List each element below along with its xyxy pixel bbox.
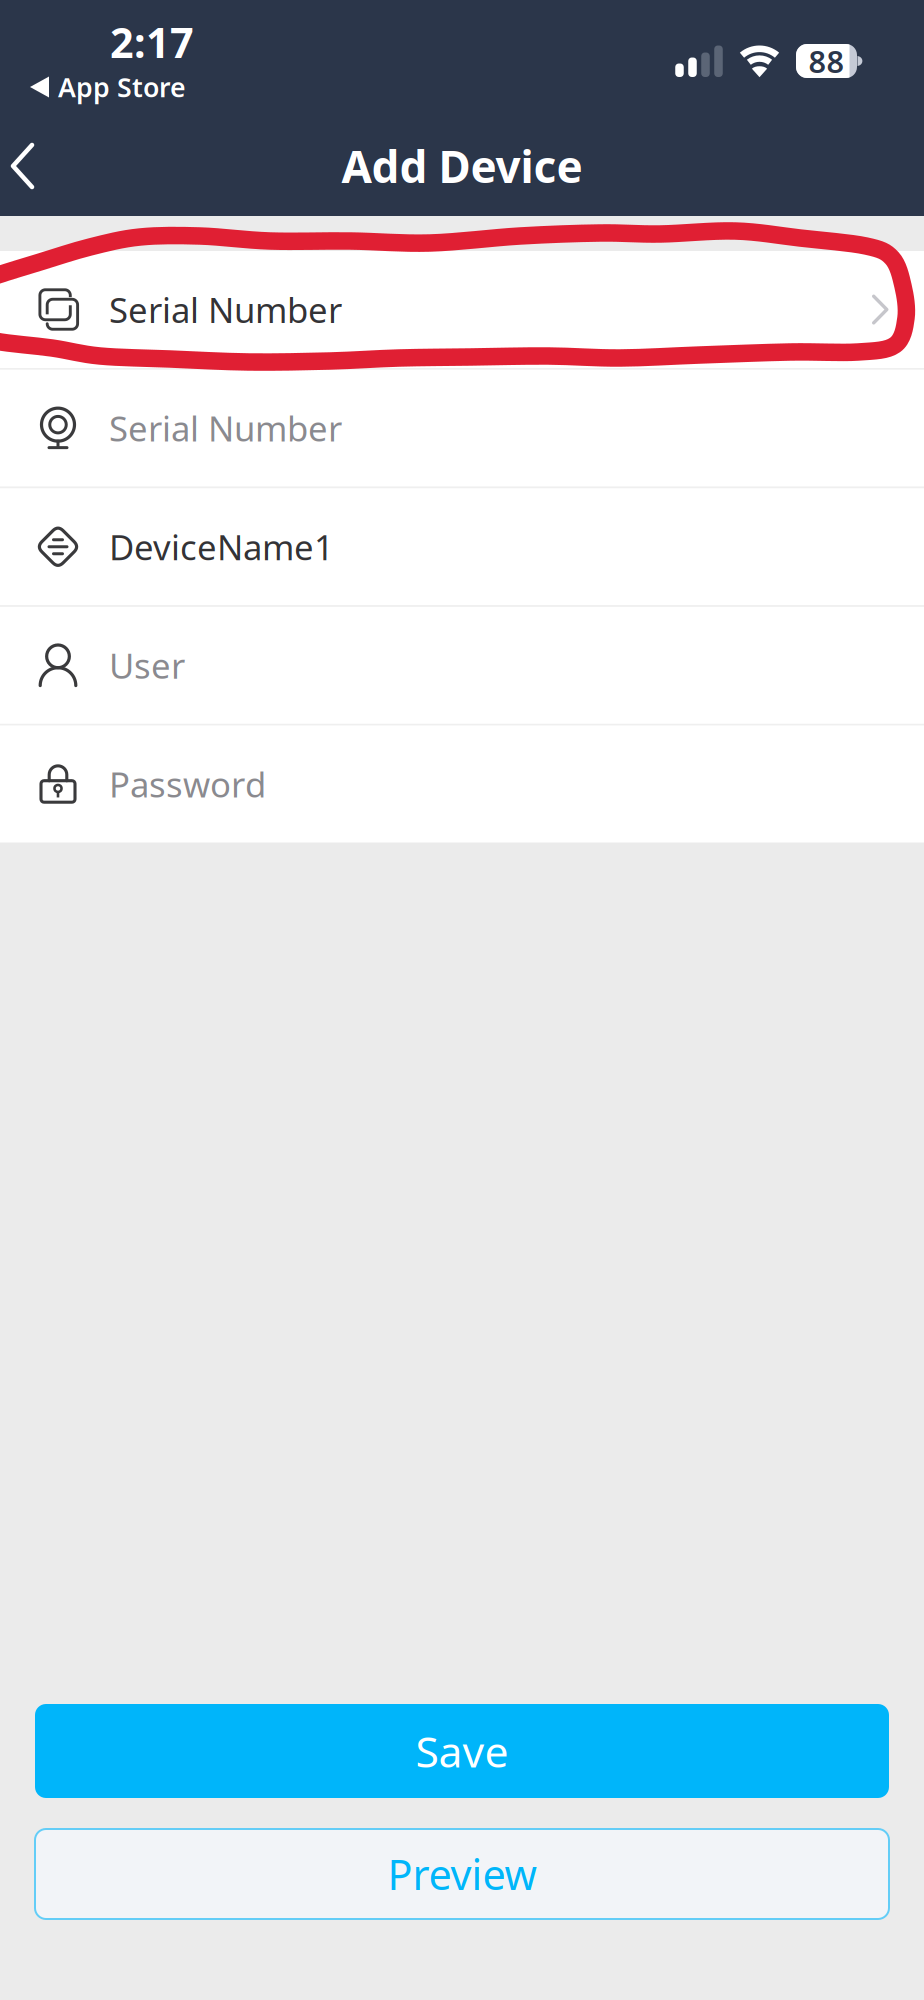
button[interactable]: DeviceName1 bbox=[0, 488, 924, 605]
button[interactable]: Preview bbox=[35, 1829, 889, 1919]
button[interactable]: Back bbox=[0, 123, 61, 209]
staticText: Add Device bbox=[341, 137, 582, 195]
staticText: Save bbox=[415, 1723, 508, 1779]
staticText: DeviceName1 bbox=[109, 524, 334, 570]
staticText: App Store bbox=[58, 69, 186, 105]
staticText: 88 bbox=[808, 41, 844, 81]
staticText: Serial Number bbox=[109, 286, 342, 332]
staticText: Preview bbox=[387, 1847, 536, 1901]
staticText: User bbox=[109, 642, 185, 688]
button[interactable]: Serial Number bbox=[0, 251, 924, 368]
button[interactable]: User bbox=[0, 607, 924, 724]
staticText: Password bbox=[109, 761, 266, 807]
button[interactable]: Serial Number bbox=[0, 370, 924, 487]
staticText: Serial Number bbox=[109, 405, 342, 451]
button[interactable]: Save bbox=[35, 1704, 889, 1798]
staticText: 2:17 bbox=[110, 15, 194, 69]
button[interactable]: Password bbox=[0, 725, 924, 842]
